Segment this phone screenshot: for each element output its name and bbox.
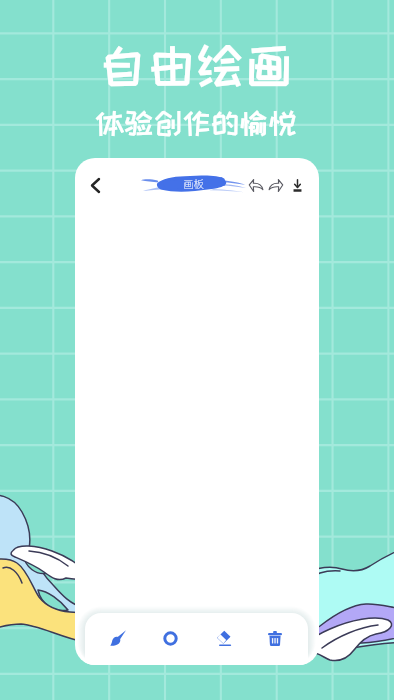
button[interactable]: Undo	[245, 174, 267, 196]
button[interactable]: Download	[286, 174, 308, 196]
button[interactable]: Delete	[256, 619, 294, 657]
staticText: 画板	[183, 176, 204, 191]
button[interactable]: Back	[81, 171, 109, 199]
button[interactable]: Shape	[151, 619, 189, 657]
staticText: 自由绘画	[99, 40, 295, 90]
staticText: 体验创作的愉悦	[96, 108, 298, 138]
button[interactable]: Eraser	[204, 619, 242, 657]
button[interactable]: Redo	[265, 174, 287, 196]
button[interactable]: Brush	[99, 619, 137, 657]
